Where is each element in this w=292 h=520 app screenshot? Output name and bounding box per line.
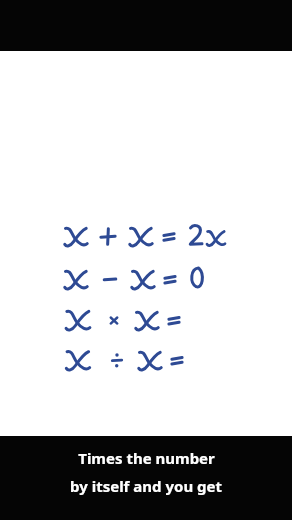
button[interactable]: Caption (0, 436, 292, 520)
staticText: Times the number (78, 448, 215, 468)
button[interactable]: Handwritten equations: x plus x equals 2… (0, 51, 292, 436)
staticText: by itself and you get (70, 476, 222, 496)
